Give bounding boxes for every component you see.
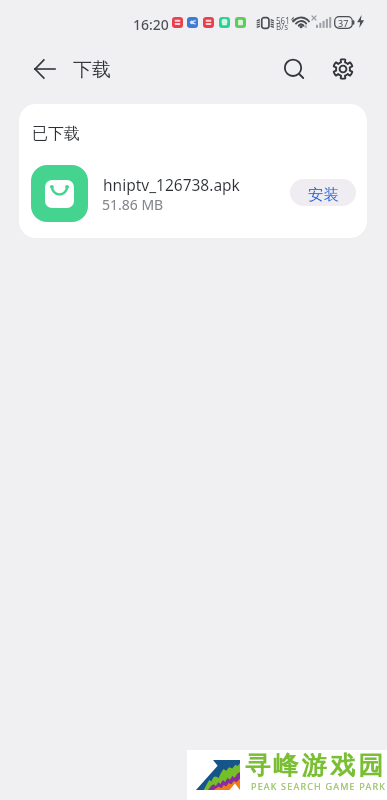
button[interactable]: hniptv_126738.apk <box>19 156 367 230</box>
button[interactable]: Settings <box>326 52 360 86</box>
staticText: 已下载 <box>32 124 80 144</box>
button[interactable]: 安装 <box>290 179 356 206</box>
staticText: B/s <box>276 21 289 32</box>
staticText: PEAK SEARCH GAME PARK <box>251 780 387 792</box>
staticText: hniptv_126738.apk <box>103 174 240 195</box>
staticText: 37 <box>338 17 349 29</box>
button[interactable]: Back <box>27 52 61 86</box>
staticText: 51.86 MB <box>102 195 164 214</box>
staticText: 安装 <box>308 185 339 205</box>
staticText: 寻峰游戏园 <box>245 750 387 781</box>
button[interactable]: Search <box>278 53 312 87</box>
staticText: 16:20 <box>133 15 169 34</box>
staticText: 下载 <box>73 58 111 82</box>
staticText: 561 <box>276 15 290 26</box>
